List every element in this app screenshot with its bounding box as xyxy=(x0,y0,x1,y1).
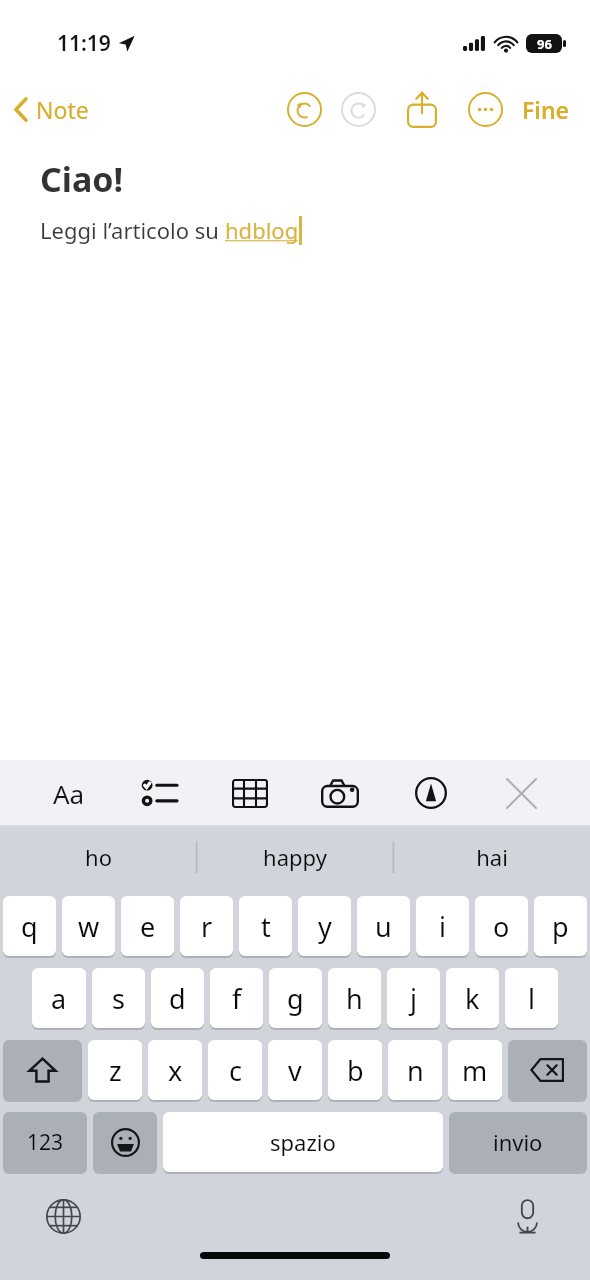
button[interactable] xyxy=(3,1040,82,1100)
staticText: spazio xyxy=(270,1127,336,1157)
staticText: w xyxy=(78,908,100,945)
staticText: p xyxy=(552,908,569,945)
other: Shift xyxy=(3,1040,82,1102)
button[interactable] xyxy=(93,1112,157,1172)
button[interactable]: s xyxy=(92,968,145,1028)
button[interactable]: Note xyxy=(8,88,95,131)
button[interactable]: x xyxy=(148,1040,202,1100)
button[interactable]: i xyxy=(416,896,469,956)
staticText: n xyxy=(407,1052,424,1089)
button[interactable]: Close keyboard xyxy=(489,765,553,821)
staticText: s xyxy=(112,980,125,1017)
button[interactable]: Text format xyxy=(37,765,101,821)
staticText: Note xyxy=(36,94,89,125)
staticText: hai xyxy=(476,842,508,872)
staticText: x xyxy=(168,1052,183,1089)
button[interactable]: j xyxy=(387,968,440,1028)
staticText: l xyxy=(528,980,535,1017)
button[interactable]: d xyxy=(151,968,204,1028)
button[interactable]: y xyxy=(298,896,351,956)
other: Backspace xyxy=(508,1040,587,1102)
button[interactable]: hai xyxy=(393,826,590,888)
staticText: z xyxy=(109,1052,122,1089)
button[interactable]: v xyxy=(268,1040,322,1100)
staticText: ho xyxy=(85,842,112,872)
button[interactable]: n xyxy=(388,1040,442,1100)
staticText: Aa xyxy=(53,776,85,811)
staticText: m xyxy=(462,1052,488,1089)
button[interactable]: Dictation xyxy=(500,1189,554,1243)
button[interactable]: hdblog xyxy=(225,215,299,245)
staticText: Leggi l’articolo su xyxy=(40,215,225,245)
button[interactable]: Fine xyxy=(512,86,580,133)
staticText: j xyxy=(410,980,417,1017)
button[interactable]: h xyxy=(328,968,381,1028)
button[interactable]: e xyxy=(121,896,174,956)
staticText: c xyxy=(229,1052,242,1089)
button[interactable]: Table xyxy=(218,765,282,821)
button[interactable]: z xyxy=(88,1040,142,1100)
other: Emoji xyxy=(93,1112,157,1174)
button[interactable]: c xyxy=(208,1040,262,1100)
staticText: f xyxy=(232,980,242,1017)
button[interactable]: Camera xyxy=(308,765,372,821)
button[interactable]: k xyxy=(446,968,499,1028)
staticText: Fine xyxy=(522,94,570,125)
button[interactable]: g xyxy=(269,968,322,1028)
staticText: 11:19 xyxy=(57,29,111,58)
staticText: Ciao! xyxy=(40,156,124,202)
button[interactable]: a xyxy=(32,968,86,1028)
staticText: q xyxy=(21,908,38,945)
button[interactable]: r xyxy=(180,896,233,956)
button[interactable]: happy xyxy=(196,826,393,888)
staticText: o xyxy=(493,908,510,945)
staticText: b xyxy=(347,1052,364,1089)
staticText: h xyxy=(346,980,363,1017)
button[interactable]: p xyxy=(534,896,587,956)
staticText: k xyxy=(465,980,480,1017)
staticText: u xyxy=(375,908,392,945)
button[interactable] xyxy=(508,1040,587,1100)
staticText: happy xyxy=(263,842,327,872)
button[interactable]: Change keyboard xyxy=(36,1189,90,1243)
button[interactable]: spazio xyxy=(163,1112,443,1172)
button[interactable]: 123 xyxy=(3,1112,87,1172)
button[interactable]: o xyxy=(475,896,528,956)
button[interactable]: m xyxy=(448,1040,502,1100)
staticText: y xyxy=(318,908,332,945)
staticText: i xyxy=(439,908,446,945)
staticText: invio xyxy=(493,1127,543,1157)
button[interactable]: b xyxy=(328,1040,382,1100)
button[interactable]: t xyxy=(239,896,292,956)
staticText: r xyxy=(201,908,213,945)
staticText: 123 xyxy=(27,1128,64,1157)
button[interactable]: More options xyxy=(458,82,512,136)
button[interactable]: Markup xyxy=(399,765,463,821)
staticText: a xyxy=(51,980,67,1017)
button[interactable]: f xyxy=(210,968,263,1028)
staticText: v xyxy=(288,1052,302,1089)
button[interactable]: invio xyxy=(449,1112,587,1172)
button[interactable]: Checklist xyxy=(127,765,191,821)
button[interactable]: Redo xyxy=(332,83,384,135)
staticText: 96 xyxy=(537,35,552,53)
staticText: d xyxy=(169,980,186,1017)
button[interactable]: q xyxy=(3,896,56,956)
staticText: g xyxy=(287,980,304,1017)
staticText: t xyxy=(261,908,271,945)
button[interactable]: ho xyxy=(0,826,196,888)
button[interactable]: Undo xyxy=(276,81,332,137)
staticText: e xyxy=(140,908,156,945)
button[interactable]: w xyxy=(62,896,115,956)
button[interactable]: l xyxy=(505,968,558,1028)
button[interactable]: Share xyxy=(394,81,450,137)
button[interactable]: u xyxy=(357,896,410,956)
